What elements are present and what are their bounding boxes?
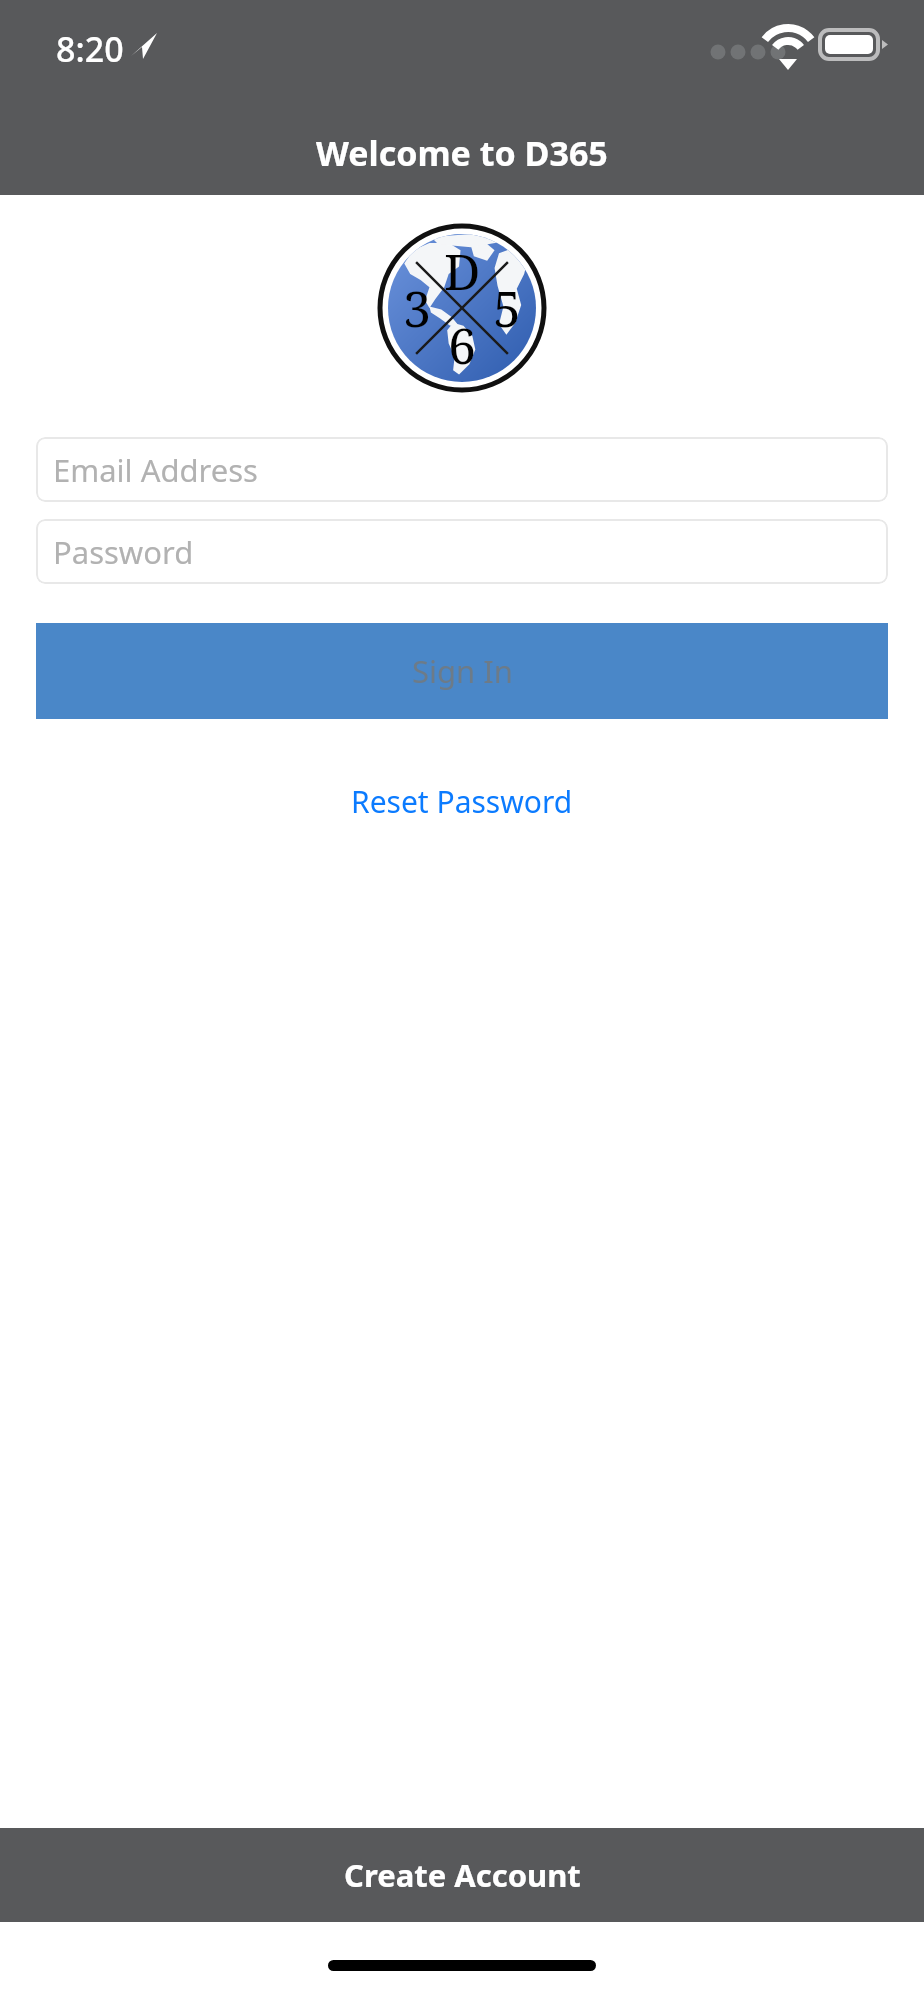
staticText: Sign In bbox=[412, 650, 513, 692]
staticText: 3 bbox=[403, 274, 431, 342]
staticText: Reset Password bbox=[351, 781, 573, 822]
staticText: D bbox=[444, 237, 481, 305]
button[interactable]: Reset Password bbox=[0, 775, 924, 827]
other: D365 logo bbox=[377, 223, 547, 393]
button[interactable]: Sign In bbox=[36, 623, 888, 719]
button[interactable]: Email Address bbox=[36, 437, 888, 502]
staticText: Email Address bbox=[53, 449, 258, 491]
staticText: 6 bbox=[448, 311, 476, 379]
button[interactable]: Password bbox=[36, 519, 888, 584]
staticText: 8:20 bbox=[56, 26, 124, 72]
staticText: Welcome to D365 bbox=[316, 130, 608, 176]
button[interactable]: Create Account bbox=[0, 1828, 924, 1922]
staticText: 5 bbox=[493, 274, 521, 342]
staticText: Create Account bbox=[344, 1854, 581, 1896]
staticText: Password bbox=[53, 531, 194, 573]
